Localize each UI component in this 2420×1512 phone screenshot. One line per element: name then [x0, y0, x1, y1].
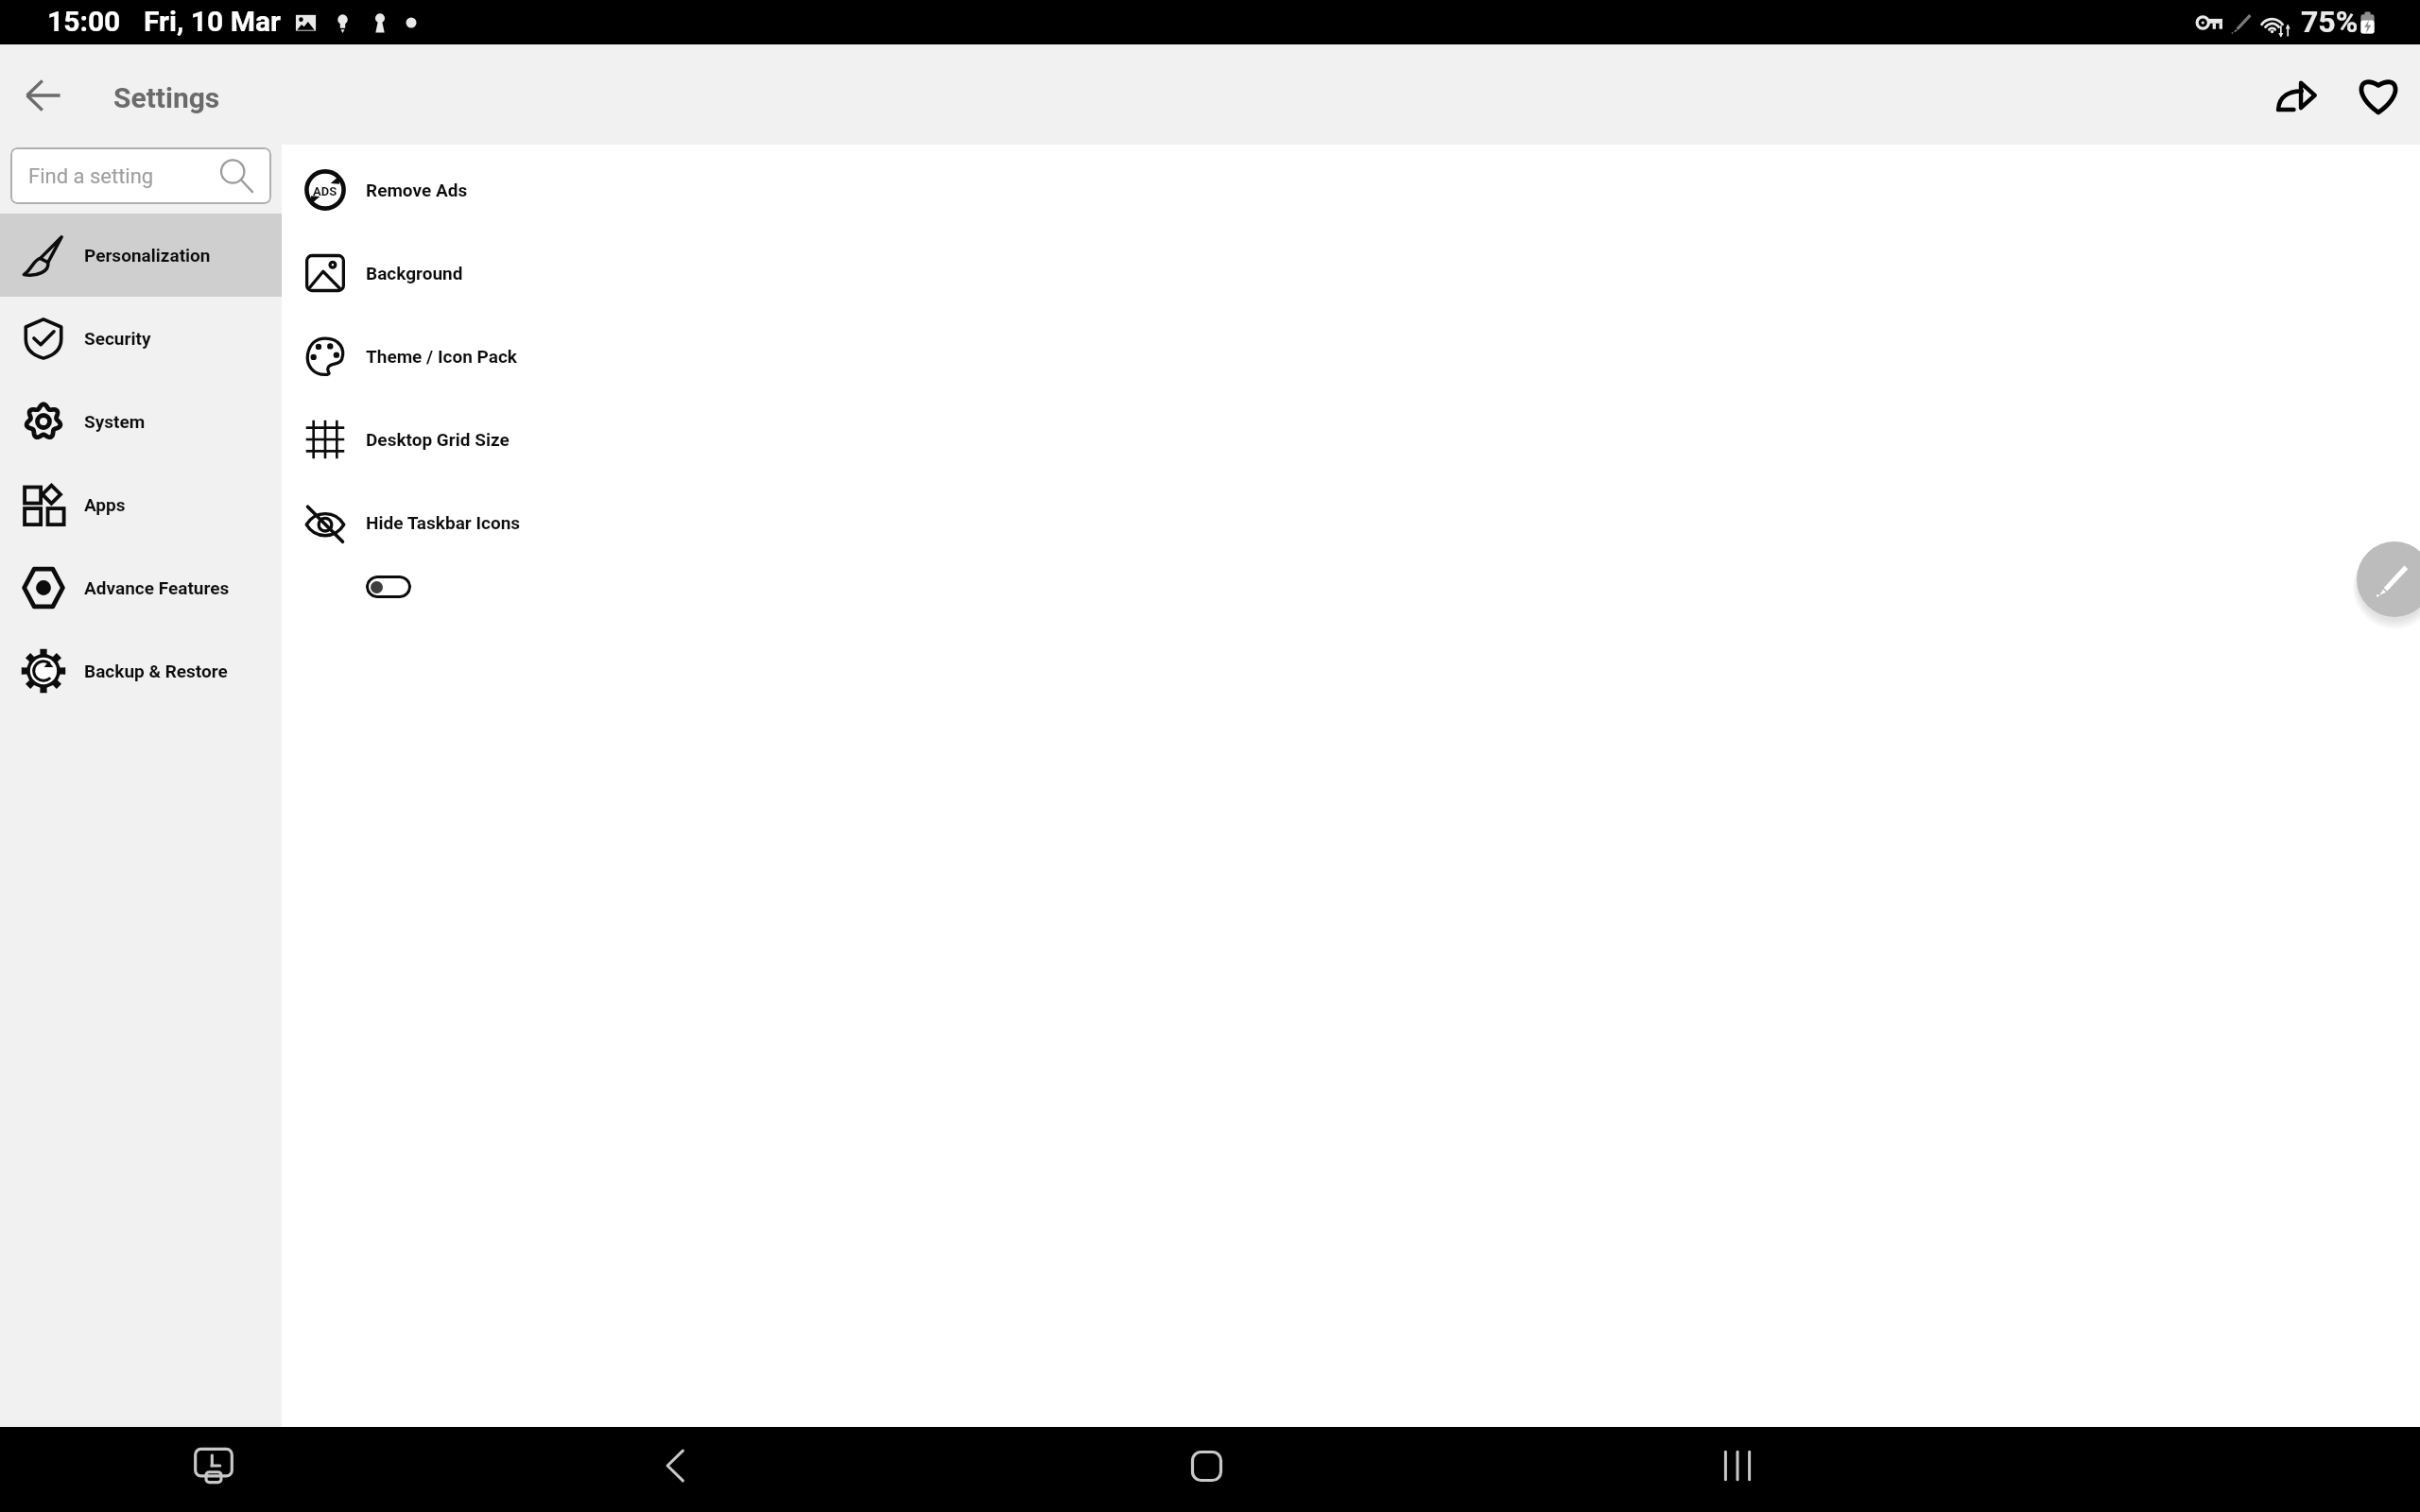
button[interactable]: Keyboard	[176, 1428, 251, 1503]
button[interactable]: Advance Features	[0, 546, 282, 629]
button[interactable]: Find a setting	[10, 147, 271, 204]
staticText: Apps	[84, 494, 126, 515]
staticText: Remove Ads	[366, 180, 468, 200]
staticText: ADS	[313, 184, 337, 198]
button[interactable]: Hide Taskbar Icons toggle	[366, 576, 411, 598]
staticText: Find a setting	[28, 164, 154, 189]
button[interactable]: Apps	[0, 463, 282, 546]
staticText: Background	[366, 263, 463, 283]
staticText: Advance Features	[84, 577, 230, 598]
staticText: Security	[84, 328, 151, 349]
button[interactable]: Desktop Grid Size	[282, 398, 2420, 481]
button[interactable]: Background	[282, 232, 2420, 315]
staticText: Fri, 10 Mar	[144, 5, 282, 38]
button[interactable]: Back	[4, 55, 83, 134]
staticText: System	[84, 411, 146, 432]
button[interactable]: Security	[0, 297, 282, 380]
staticText: 75%	[2301, 4, 2359, 40]
button[interactable]: System	[0, 380, 282, 463]
staticText: Desktop Grid Size	[366, 429, 510, 450]
button[interactable]: Share	[2256, 55, 2336, 134]
staticText: Hide Taskbar Icons	[366, 512, 521, 533]
button[interactable]: Recents	[1700, 1428, 1775, 1503]
button[interactable]: Edit	[2357, 541, 2420, 617]
button[interactable]: Hide Taskbar Icons	[282, 481, 2420, 564]
button[interactable]: ADS	[282, 148, 2420, 232]
button[interactable]: Backup & Restore	[0, 629, 282, 713]
staticText: Backup & Restore	[84, 661, 228, 681]
staticText: Settings	[113, 81, 220, 114]
button[interactable]: Favorite	[2339, 55, 2418, 134]
staticText: 15:00	[47, 5, 121, 38]
button[interactable]: Personalization	[0, 214, 282, 297]
button[interactable]: Back	[637, 1428, 713, 1503]
staticText: Theme / Icon Pack	[366, 346, 517, 367]
button[interactable]: Theme / Icon Pack	[282, 315, 2420, 398]
staticText: Personalization	[84, 245, 211, 266]
button[interactable]: Home	[1168, 1428, 1244, 1503]
